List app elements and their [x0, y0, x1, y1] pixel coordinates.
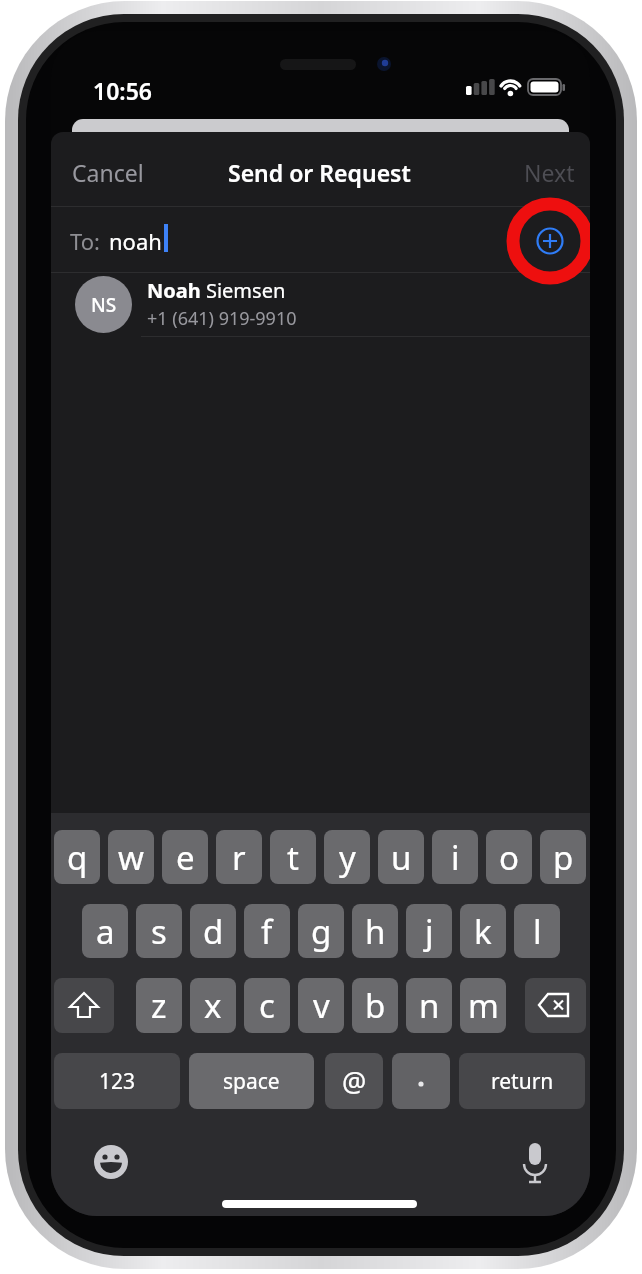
button[interactable]: t [270, 830, 316, 884]
button[interactable] [525, 978, 586, 1033]
button[interactable]: NS [75, 274, 575, 334]
staticText: o [499, 835, 519, 880]
staticText: 123 [99, 1067, 136, 1096]
button[interactable]: Cancel [72, 157, 144, 188]
staticText: +1 (641) 919-9910 [147, 306, 297, 331]
staticText: u [391, 835, 412, 880]
staticText: 10:56 [93, 75, 152, 106]
button[interactable]: o [486, 830, 532, 884]
staticText: v [313, 983, 330, 1028]
staticText: return [491, 1067, 554, 1096]
button[interactable]: j [406, 904, 452, 958]
button[interactable]: c [244, 978, 290, 1033]
button[interactable]: h [352, 904, 398, 958]
staticText: t [287, 835, 299, 880]
staticText: g [311, 909, 332, 954]
button[interactable]: n [406, 978, 452, 1033]
staticText: w [118, 835, 144, 880]
button[interactable]: w [108, 830, 154, 884]
staticText: Cancel [72, 157, 144, 188]
button[interactable]: g [298, 904, 344, 958]
button[interactable]: l [514, 904, 560, 958]
staticText: c [259, 983, 275, 1028]
staticText: Noah Siemsen [147, 277, 286, 304]
button[interactable] [91, 1142, 131, 1182]
button[interactable]: space [189, 1053, 314, 1109]
staticText: l [533, 909, 542, 954]
staticText: space [223, 1067, 280, 1096]
staticText: n [419, 983, 440, 1028]
staticText: e [176, 835, 195, 880]
staticText: y [339, 835, 356, 880]
staticText: r [232, 835, 246, 880]
staticText: s [151, 909, 167, 954]
button[interactable]: z [136, 978, 182, 1033]
button[interactable]: 123 [54, 1053, 180, 1109]
button[interactable]: @ [325, 1053, 383, 1109]
button[interactable]: y [324, 830, 370, 884]
staticText: k [474, 909, 492, 954]
staticText: i [451, 835, 460, 880]
button[interactable]: k [460, 904, 506, 958]
button[interactable]: p [540, 830, 586, 884]
staticText: To: [70, 226, 100, 256]
staticText: noah [109, 226, 162, 256]
button[interactable]: return [459, 1053, 585, 1109]
staticText: Next [524, 157, 575, 188]
button[interactable]: u [378, 830, 424, 884]
button[interactable]: v [298, 978, 344, 1033]
staticText: x [204, 983, 222, 1028]
staticText: m [468, 983, 499, 1028]
button[interactable]: i [432, 830, 478, 884]
button[interactable] [530, 221, 570, 261]
button[interactable]: d [190, 904, 236, 958]
staticText: b [365, 983, 386, 1028]
button[interactable] [392, 1053, 450, 1109]
button[interactable] [54, 978, 114, 1033]
button[interactable]: s [136, 904, 182, 958]
staticText: d [203, 909, 224, 954]
button[interactable]: a [82, 904, 128, 958]
button[interactable]: b [352, 978, 398, 1033]
button[interactable]: m [460, 978, 506, 1033]
button[interactable]: Next [524, 157, 575, 188]
staticText: h [365, 909, 386, 954]
staticText: j [425, 909, 434, 954]
staticText: z [151, 983, 167, 1028]
button[interactable]: f [244, 904, 290, 958]
staticText: Send or Request [228, 157, 411, 188]
button[interactable]: x [190, 978, 236, 1033]
staticText: q [67, 835, 88, 880]
staticText: f [261, 909, 273, 954]
button[interactable]: e [162, 830, 208, 884]
staticText: p [553, 835, 574, 880]
button[interactable] [515, 1142, 555, 1182]
button[interactable]: r [216, 830, 262, 884]
button[interactable]: q [54, 830, 100, 884]
staticText: a [96, 909, 115, 954]
staticText: @ [342, 1063, 367, 1100]
staticText: NS [91, 292, 117, 318]
